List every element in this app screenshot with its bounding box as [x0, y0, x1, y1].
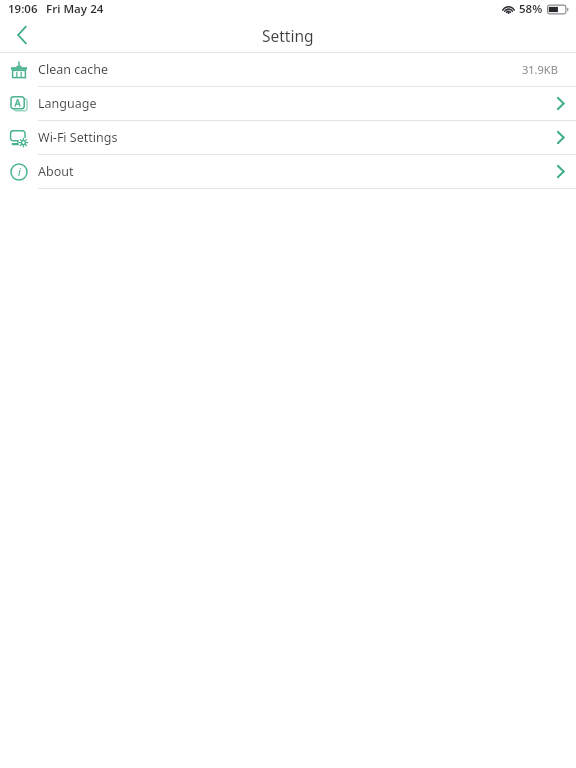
- staticText: i: [18, 165, 21, 179]
- button[interactable]: Back: [0, 18, 44, 52]
- staticText: Wi-Fi Settings: [38, 129, 118, 146]
- staticText: Fri May 24: [46, 1, 104, 17]
- button[interactable]: Clean cache: [0, 53, 576, 86]
- staticText: 58%: [519, 1, 543, 17]
- staticText: Clean cache: [38, 61, 108, 78]
- staticText: 19:06: [8, 1, 38, 17]
- staticText: Language: [38, 95, 97, 112]
- button[interactable]: i: [0, 155, 576, 188]
- staticText: About: [38, 163, 74, 180]
- staticText: 31.9KB: [522, 62, 558, 77]
- button[interactable]: Wi-Fi Settings: [0, 121, 576, 154]
- button[interactable]: Language: [0, 87, 576, 120]
- staticText: Setting: [262, 25, 314, 46]
